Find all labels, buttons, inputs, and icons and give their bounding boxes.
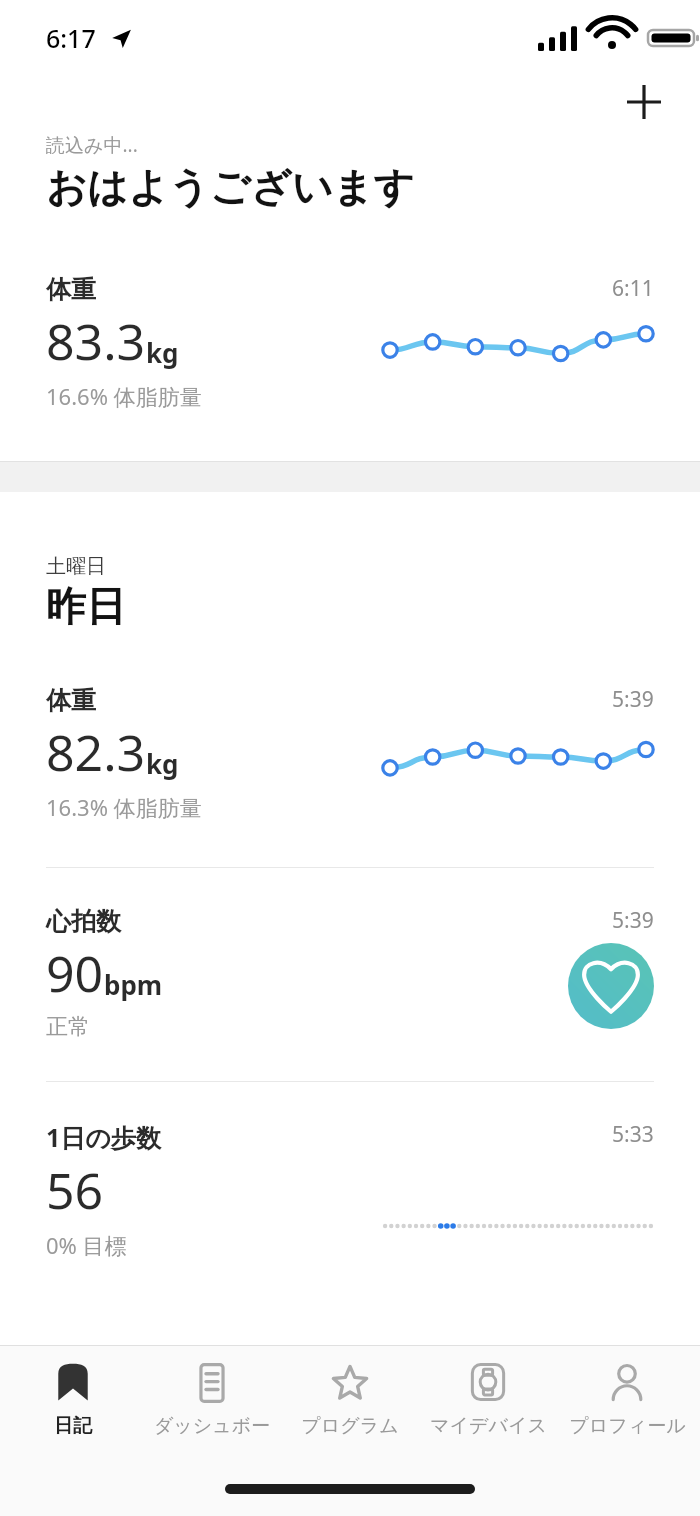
staticText: kg: [146, 746, 179, 781]
staticText: 83.3: [46, 307, 146, 375]
button[interactable]: 体重: [0, 274, 700, 411]
button[interactable]: 体重: [0, 685, 700, 822]
staticText: 1日の歩数: [46, 1120, 161, 1154]
staticText: おはようございます: [46, 162, 415, 212]
staticText: プログラム: [301, 1414, 399, 1438]
button[interactable]: プログラム: [285, 1346, 415, 1438]
staticText: プロフィール: [569, 1414, 686, 1438]
staticText: 6:17: [46, 21, 96, 55]
staticText: 正常: [46, 1013, 90, 1041]
staticText: kg: [146, 335, 179, 370]
staticText: 5:33: [612, 1120, 654, 1149]
button[interactable]: Add: [618, 76, 670, 128]
staticText: 16.3% 体脂肪量: [46, 792, 202, 822]
button[interactable]: 1日の歩数: [0, 1120, 700, 1260]
staticText: 日記: [54, 1414, 92, 1438]
staticText: 昨日: [46, 581, 126, 631]
staticText: 56: [46, 1156, 104, 1224]
staticText: 心拍数: [46, 906, 121, 937]
staticText: 0% 目標: [46, 1230, 127, 1260]
staticText: 5:39: [612, 906, 654, 935]
button[interactable]: 日記: [8, 1346, 138, 1438]
button[interactable]: 心拍数: [0, 906, 700, 1041]
staticText: 5:39: [612, 685, 654, 714]
staticText: ダッシュボード: [147, 1414, 277, 1438]
staticText: 82.3: [46, 718, 146, 786]
staticText: 16.6% 体脂肪量: [46, 381, 202, 411]
staticText: 体重: [46, 274, 96, 305]
staticText: 6:11: [612, 274, 654, 303]
button[interactable]: プロフィール: [562, 1346, 692, 1438]
staticText: 90: [46, 939, 104, 1007]
staticText: マイデバイス: [430, 1414, 547, 1438]
staticText: 体重: [46, 685, 96, 716]
staticText: bpm: [104, 967, 163, 1002]
button[interactable]: マイデバイス: [423, 1346, 553, 1438]
button[interactable]: ダッシュボード: [147, 1346, 277, 1438]
staticText: 読込み中...: [46, 132, 138, 158]
staticText: 土曜日: [46, 554, 106, 579]
